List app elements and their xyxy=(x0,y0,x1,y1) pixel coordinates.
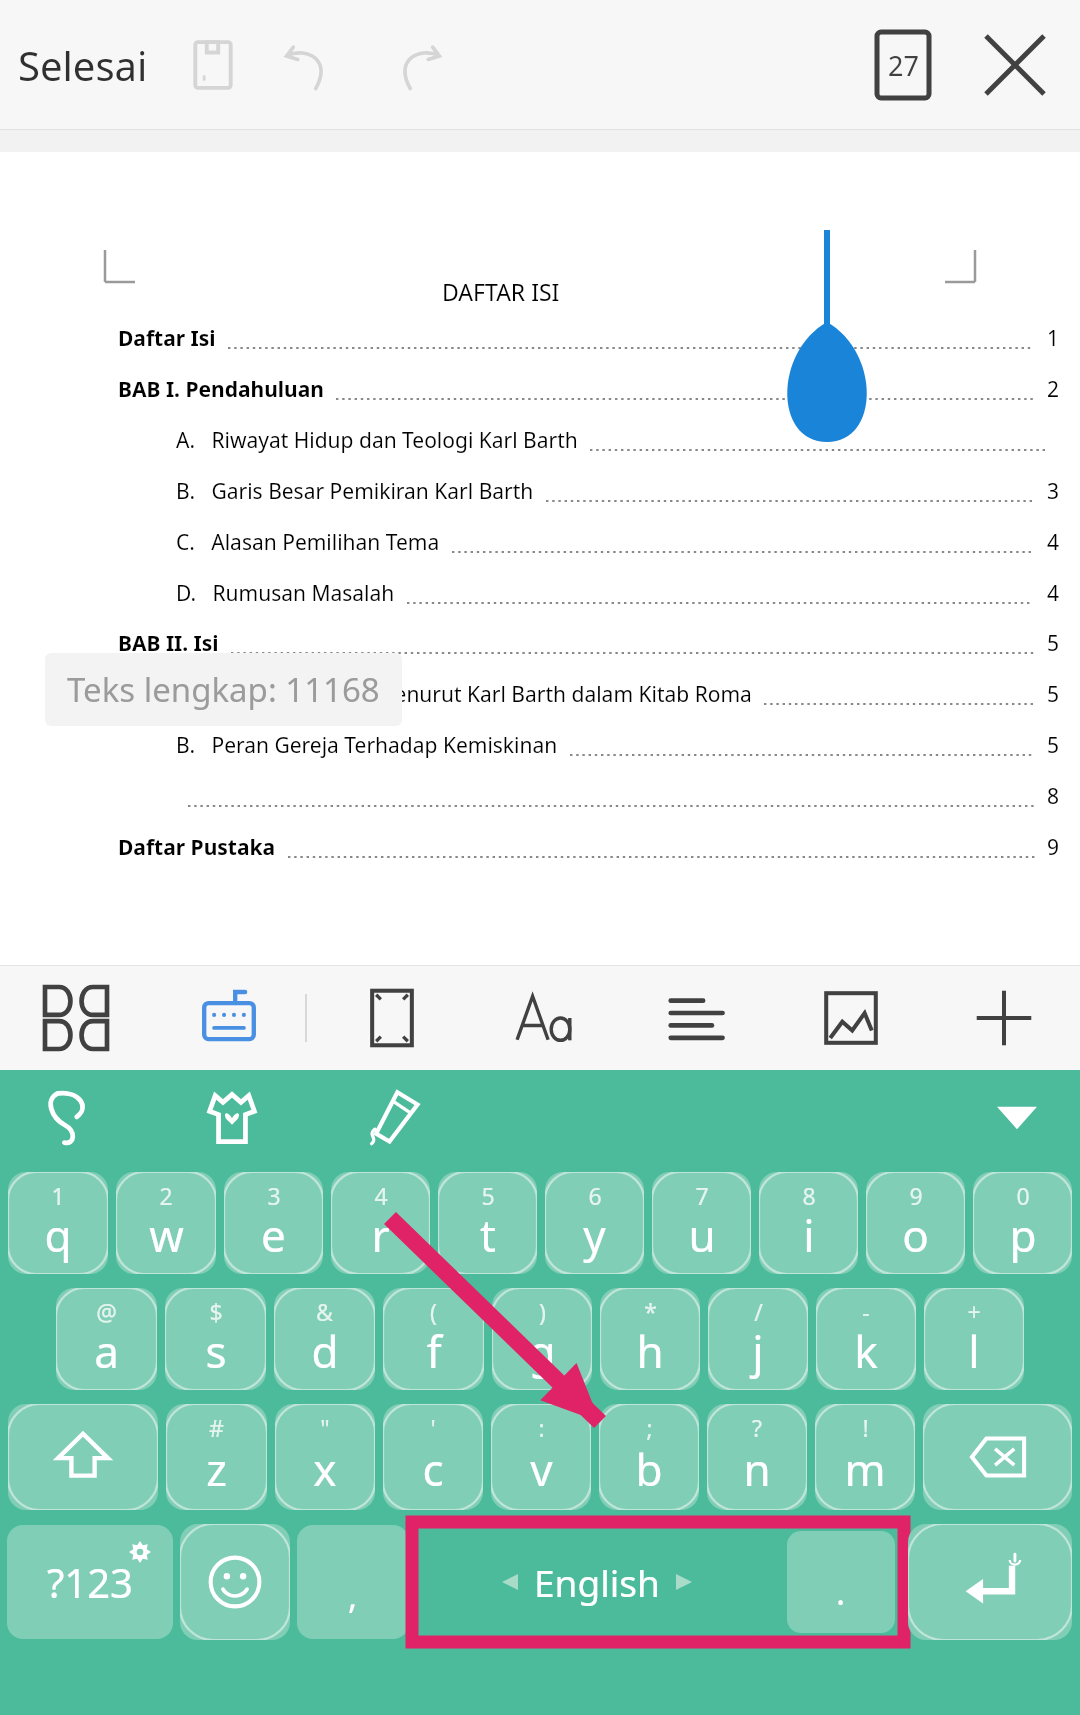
button[interactable]: Collapse keyboard xyxy=(972,1073,1062,1163)
button[interactable]: 7 xyxy=(652,1172,751,1274)
button[interactable]: ( xyxy=(383,1288,484,1390)
staticText: ( xyxy=(430,1296,437,1327)
staticText: s xyxy=(205,1321,227,1381)
staticText: 27 xyxy=(888,47,919,84)
staticText: 1 xyxy=(51,1180,65,1211)
button[interactable]: / xyxy=(708,1288,808,1390)
staticText: i xyxy=(803,1205,815,1265)
button[interactable]: Handwriting xyxy=(352,1076,436,1160)
button[interactable]: ?123 xyxy=(7,1525,173,1639)
staticText: m xyxy=(844,1439,886,1499)
button[interactable]: Emoji xyxy=(180,1524,290,1640)
staticText: q xyxy=(44,1205,72,1265)
button[interactable]: 5 xyxy=(438,1172,537,1274)
button[interactable]: Paragraph xyxy=(621,966,774,1070)
button[interactable]: Redo xyxy=(378,26,456,104)
staticText: , xyxy=(348,1573,358,1619)
button[interactable]: , xyxy=(297,1525,409,1639)
button[interactable]: Shift xyxy=(8,1404,158,1510)
staticText: Teks lengkap: 11168 xyxy=(67,667,380,712)
button[interactable]: 2 xyxy=(116,1172,216,1274)
staticText: 1 xyxy=(1047,324,1060,353)
staticText: / xyxy=(754,1296,763,1327)
button[interactable]: Font xyxy=(468,966,621,1070)
button[interactable]: English xyxy=(421,1531,773,1633)
button[interactable]: + xyxy=(924,1288,1024,1390)
button[interactable]: ' xyxy=(383,1404,483,1510)
button[interactable]: " xyxy=(275,1404,375,1510)
button[interactable]: Save xyxy=(174,26,252,104)
button[interactable]: $ xyxy=(165,1288,266,1390)
staticText: k xyxy=(854,1321,878,1381)
staticText: 9 xyxy=(909,1180,923,1211)
button[interactable]: & xyxy=(274,1288,375,1390)
staticText: 6 xyxy=(588,1180,602,1211)
staticText: 5 xyxy=(1047,629,1060,658)
staticText: Daftar Pustaka xyxy=(118,833,276,862)
button[interactable]: Blocks xyxy=(0,966,152,1070)
staticText: n xyxy=(743,1439,771,1499)
button[interactable]: . xyxy=(787,1531,895,1633)
button[interactable]: 4 xyxy=(331,1172,430,1274)
staticText: B. Peran Gereja Terhadap Kemiskinan xyxy=(176,731,558,760)
button[interactable]: ; xyxy=(599,1404,699,1510)
button[interactable]: Page layout xyxy=(315,966,468,1070)
button[interactable]: Themes xyxy=(190,1076,274,1160)
staticText: h xyxy=(636,1321,664,1381)
button[interactable]: Insert image xyxy=(774,966,927,1070)
staticText: 5 xyxy=(1047,731,1060,760)
button[interactable]: 3 xyxy=(224,1172,323,1274)
button[interactable]: Insert xyxy=(927,966,1080,1070)
staticText: f xyxy=(426,1321,442,1381)
staticText: A. Riwayat Hidup dan Teologi Karl Barth xyxy=(176,426,578,455)
button[interactable]: Selesai xyxy=(14,38,152,92)
staticText: e xyxy=(261,1205,286,1265)
button[interactable]: 0 xyxy=(973,1172,1072,1274)
staticText: ! xyxy=(862,1412,869,1443)
button[interactable]: 9 xyxy=(866,1172,965,1274)
staticText: DAFTAR ISI xyxy=(442,276,560,307)
button[interactable]: Undo xyxy=(270,26,348,104)
staticText: 7 xyxy=(695,1180,709,1211)
staticText: z xyxy=(206,1439,227,1499)
button[interactable]: ! xyxy=(815,1404,915,1510)
staticText: B. Garis Besar Pemikiran Karl Barth xyxy=(176,477,534,506)
staticText: 8 xyxy=(802,1180,816,1211)
button[interactable]: 1 xyxy=(8,1172,108,1274)
staticText: 4 xyxy=(1047,579,1060,608)
button[interactable]: Keyboard xyxy=(152,966,305,1070)
staticText: r xyxy=(371,1205,390,1265)
staticText: # xyxy=(209,1412,224,1443)
button[interactable]: * xyxy=(600,1288,700,1390)
staticText: c xyxy=(422,1439,444,1499)
button[interactable]: - xyxy=(816,1288,916,1390)
button[interactable]: Stickers xyxy=(28,1076,112,1160)
button[interactable]: : xyxy=(491,1404,591,1510)
staticText: English xyxy=(534,1557,660,1607)
button[interactable]: # xyxy=(166,1404,267,1510)
button[interactable]: @ xyxy=(56,1288,157,1390)
button[interactable]: Enter xyxy=(908,1524,1072,1640)
button[interactable]: 27 xyxy=(860,22,946,108)
staticText: . xyxy=(836,1569,846,1615)
button[interactable]: ) xyxy=(492,1288,592,1390)
staticText: ?123 xyxy=(47,1555,133,1609)
staticText: + xyxy=(967,1296,981,1327)
staticText: p xyxy=(1009,1205,1037,1265)
staticText: BAB I. Pendahuluan xyxy=(118,375,324,404)
button[interactable]: 6 xyxy=(545,1172,644,1274)
staticText: 5 xyxy=(1047,680,1060,709)
button[interactable]: Close xyxy=(972,22,1058,108)
staticText: 3 xyxy=(267,1180,281,1211)
staticText: v xyxy=(530,1439,553,1499)
button[interactable]: Backspace xyxy=(923,1404,1072,1510)
staticText: g xyxy=(528,1321,556,1381)
staticText: ) xyxy=(539,1296,546,1327)
button[interactable]: 8 xyxy=(759,1172,858,1274)
button[interactable]: ? xyxy=(707,1404,807,1510)
staticText: ' xyxy=(430,1412,436,1443)
staticText: C. Alasan Pemilihan Tema xyxy=(176,528,440,557)
staticText: d xyxy=(311,1321,339,1381)
staticText: j xyxy=(752,1321,764,1381)
staticText: y xyxy=(583,1205,606,1265)
